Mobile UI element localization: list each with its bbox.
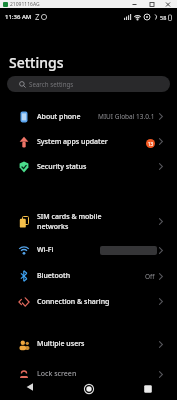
- button[interactable]: About phone: [0, 104, 177, 129]
- button[interactable]: Lock screen: [0, 361, 177, 387]
- staticText: Settings: [9, 53, 64, 72]
- button[interactable]: Bluetooth: [0, 263, 177, 289]
- staticText: Lock screen: [37, 369, 77, 379]
- button[interactable]: [118, 378, 177, 400]
- staticText: SIM cards & mobile: [37, 212, 102, 222]
- staticText: 13: [148, 141, 154, 147]
- staticText: About phone: [37, 112, 81, 122]
- staticText: Security status: [37, 162, 87, 172]
- button[interactable]: Multiple users: [0, 331, 177, 357]
- button[interactable]: Connection & sharing: [0, 289, 177, 314]
- staticText: System apps updater: [37, 137, 108, 147]
- button[interactable]: System apps updater: [0, 129, 177, 154]
- button[interactable]: [0, 378, 59, 400]
- staticText: 58: [160, 14, 167, 21]
- staticText: 21091116AG: [10, 1, 40, 8]
- staticText: Multiple users: [37, 339, 85, 349]
- button[interactable]: [59, 378, 118, 400]
- staticText: Search settings: [29, 80, 74, 88]
- staticText: networks: [37, 222, 69, 232]
- button[interactable]: SIM cards & mobile: [0, 206, 177, 237]
- staticText: Off: [145, 272, 155, 281]
- staticText: Bluetooth: [37, 271, 71, 281]
- staticText: Wi-Fi: [37, 245, 54, 255]
- staticText: 11:36 AM: [5, 13, 32, 21]
- button[interactable]: Wi-Fi: [0, 237, 177, 263]
- staticText: Connection & sharing: [37, 297, 110, 307]
- button[interactable]: Search settings: [7, 76, 170, 92]
- button[interactable]: Security status: [0, 154, 177, 179]
- staticText: MIUI Global 13.0.1: [98, 112, 155, 121]
